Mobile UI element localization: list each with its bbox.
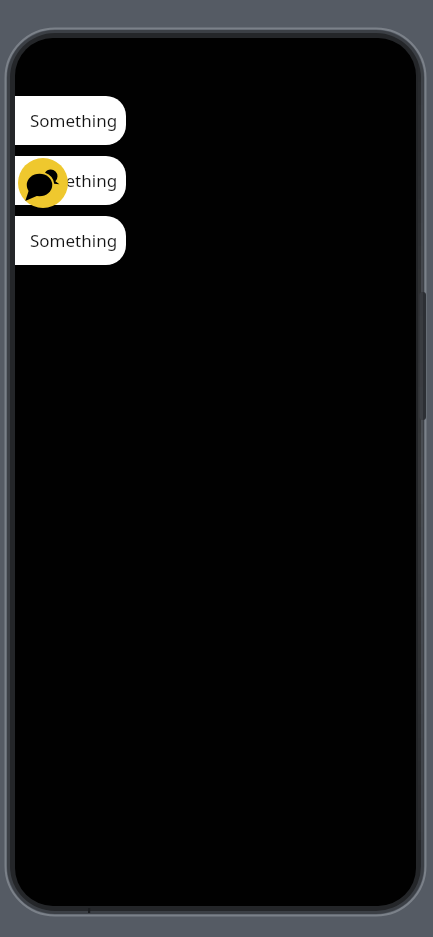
button[interactable]: Something — [15, 96, 126, 145]
button[interactable]: Something — [15, 216, 126, 265]
staticText: Something — [30, 109, 118, 132]
staticText: Something — [30, 169, 118, 192]
button[interactable]: New chat — [18, 158, 68, 208]
staticText: Something — [30, 229, 118, 252]
button[interactable]: Something — [15, 156, 126, 205]
